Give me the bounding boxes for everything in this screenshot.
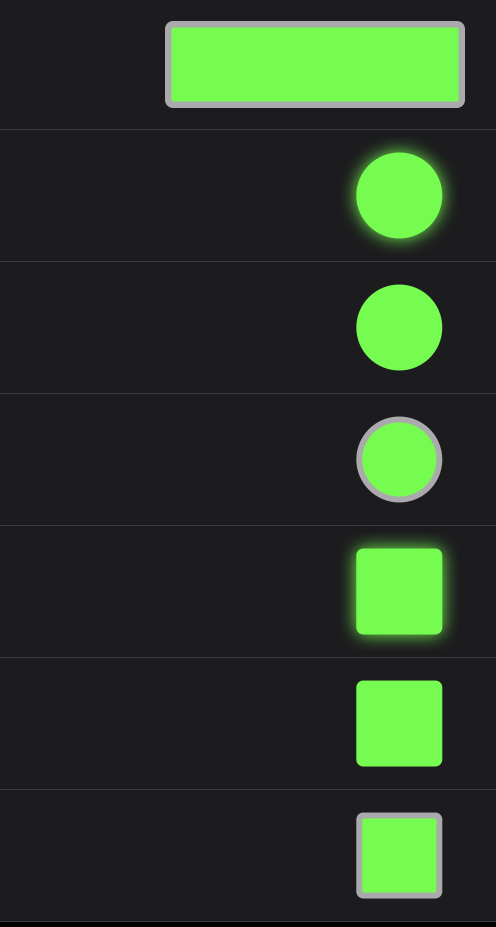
button[interactable]: Circle, bordered: [0, 394, 496, 526]
button[interactable]: Rounded square: [0, 658, 496, 790]
button[interactable]: Circle: [0, 262, 496, 394]
button[interactable]: Rounded square, bordered: [0, 790, 496, 922]
button[interactable]: Circle, glowing: [0, 130, 496, 262]
button[interactable]: Rounded bar, bordered: [0, 0, 496, 130]
button[interactable]: Rounded square, glowing: [0, 526, 496, 658]
